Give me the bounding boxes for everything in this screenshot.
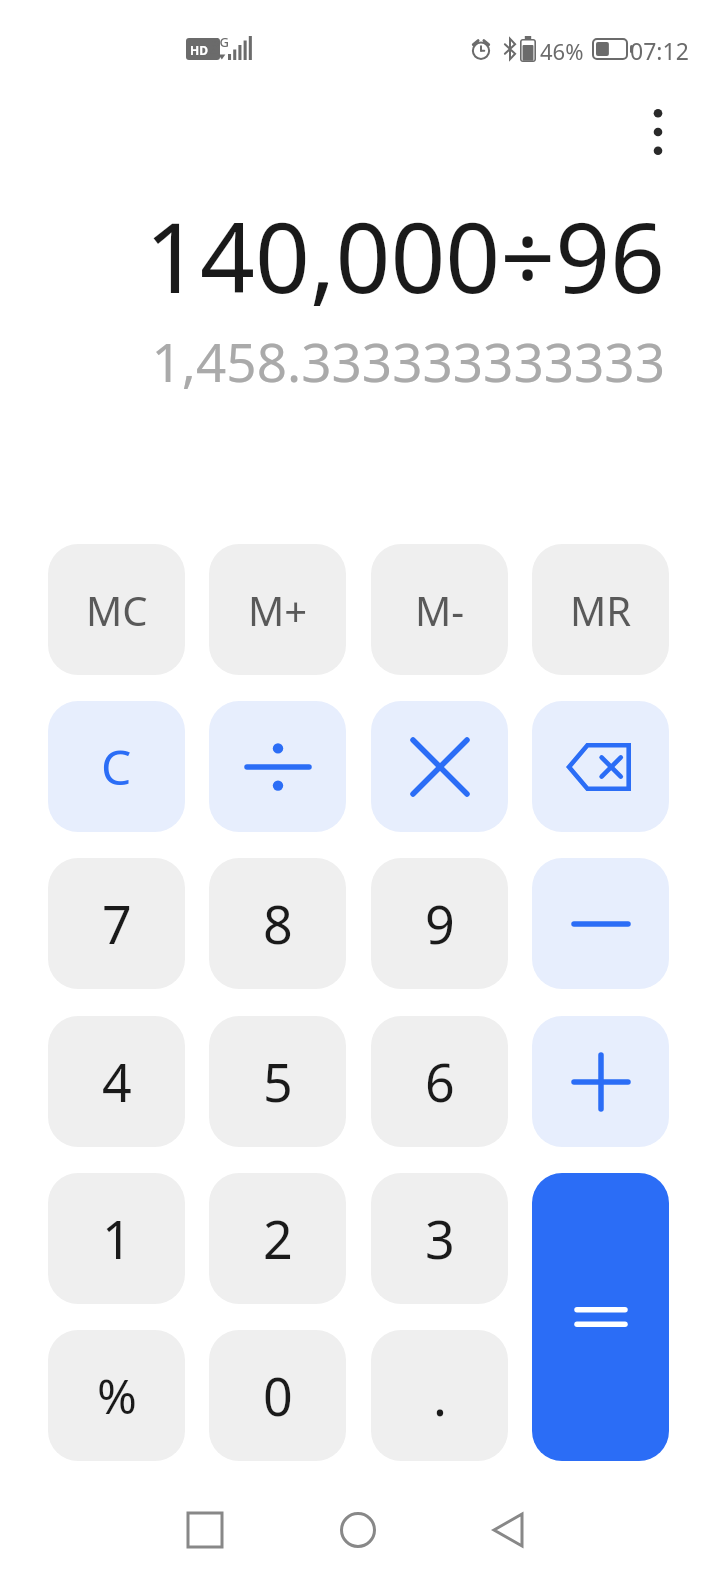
button[interactable]: . [371,1330,508,1461]
staticText: 6 [425,1046,455,1117]
staticText: 8 [263,888,293,959]
staticText: 3 [425,1203,455,1274]
button[interactable]: MC [48,544,185,675]
staticText: 1 [102,1203,132,1274]
staticText: 9 [425,888,455,959]
staticText: 7 [102,888,132,959]
button[interactable]: 4 [48,1016,185,1147]
button[interactable]: % [48,1330,185,1461]
staticText: C [101,734,132,799]
button[interactable]: Minus [532,858,669,989]
button[interactable]: 0 [209,1330,346,1461]
button[interactable]: Home [313,1486,403,1574]
staticText: 07:12 [630,35,689,66]
button[interactable]: 1 [48,1173,185,1304]
button[interactable]: Back [463,1486,553,1574]
button[interactable]: 3 [371,1173,508,1304]
button[interactable]: More options [622,86,694,178]
button[interactable]: M+ [209,544,346,675]
button[interactable]: 7 [48,858,185,989]
staticText: 2 [263,1203,293,1274]
button[interactable]: 2 [209,1173,346,1304]
button[interactable]: Divide [209,701,346,832]
button[interactable]: M- [371,544,508,675]
staticText: 1,458.333333333333 [48,325,665,397]
staticText: . [433,1360,447,1431]
staticText: 140,000÷96 [48,190,665,321]
button[interactable]: 6 [371,1016,508,1147]
staticText: 4 [102,1046,132,1117]
button[interactable]: C [48,701,185,832]
staticText: HD [190,42,208,58]
staticText: MR [570,583,632,637]
staticText: % [97,1363,137,1428]
button[interactable]: 5 [209,1016,346,1147]
button[interactable]: 9 [371,858,508,989]
button[interactable]: Equals [532,1173,669,1461]
button[interactable]: Recents [160,1486,250,1574]
staticText: 5 [263,1046,293,1117]
staticText: 5G [212,33,229,51]
button[interactable]: 8 [209,858,346,989]
staticText: MC [86,583,148,637]
staticText: 46% [540,36,584,66]
button[interactable]: Backspace [532,701,669,832]
staticText: M- [415,583,465,637]
staticText: 0 [263,1360,293,1431]
button[interactable]: Multiply [371,701,508,832]
button[interactable]: Plus [532,1016,669,1147]
staticText: M+ [248,583,308,637]
button[interactable]: MR [532,544,669,675]
